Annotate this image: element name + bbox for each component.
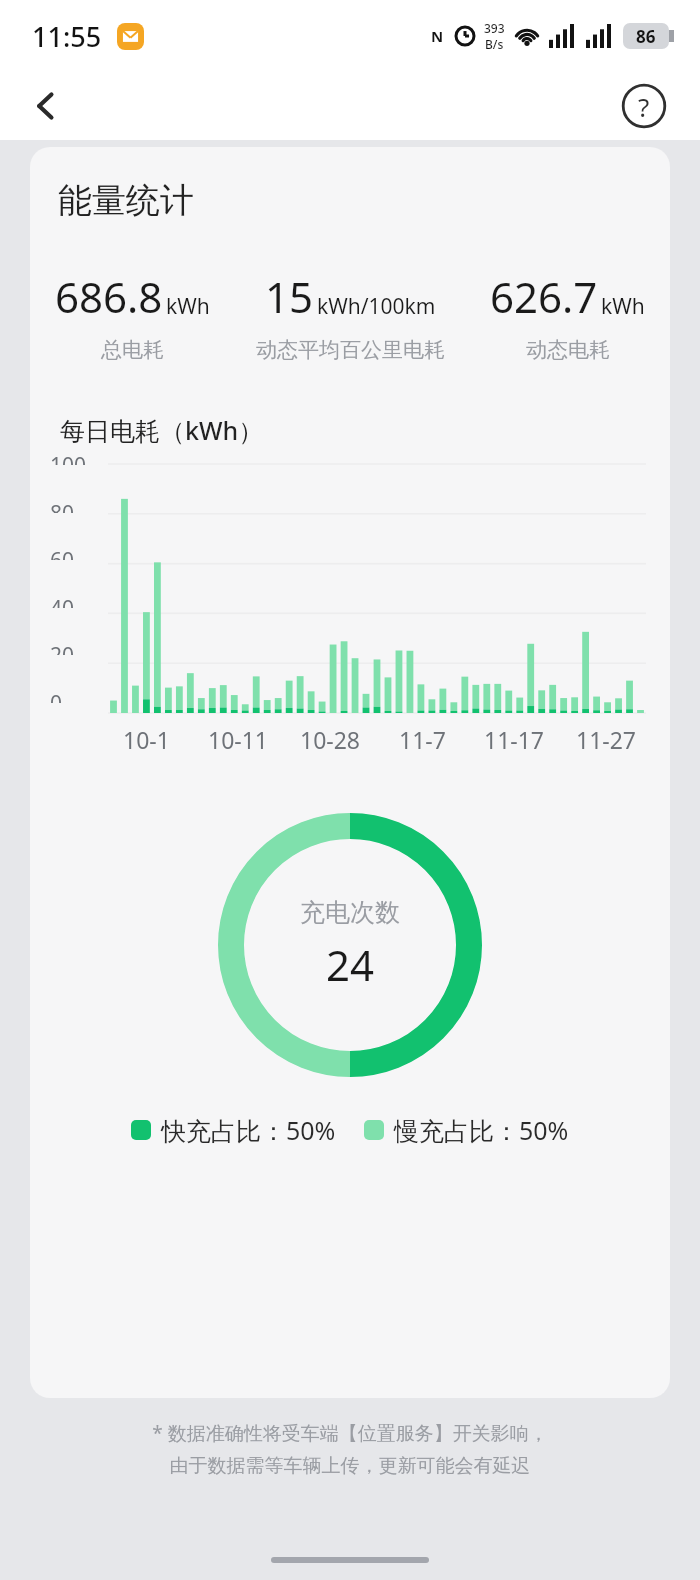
staticText: 626.7	[490, 268, 598, 325]
staticText: 慢充占比：50%	[394, 1113, 569, 1147]
staticText: 40	[50, 594, 100, 608]
button[interactable]: Help	[616, 78, 672, 134]
staticText: ?	[638, 89, 650, 124]
staticText: 快充占比：50%	[161, 1113, 336, 1147]
staticText: 10-1	[123, 724, 170, 755]
staticText: 686.8	[55, 268, 163, 325]
staticText: 每日电耗（kWh）	[60, 413, 264, 447]
staticText: kWh	[166, 292, 210, 321]
button[interactable]: 快充占比：50%	[131, 1113, 336, 1147]
staticText: 11-7	[399, 724, 446, 755]
staticText: 11:55	[32, 18, 102, 55]
staticText: * 数据准确性将受车端【位置服务】开关影响，	[0, 1420, 700, 1446]
staticText: 10-28	[300, 724, 361, 755]
staticText: 总电耗	[101, 337, 164, 363]
staticText: 能量统计	[58, 179, 194, 222]
button[interactable]: 慢充占比：50%	[364, 1113, 569, 1147]
staticText: kWh	[601, 292, 645, 321]
staticText: 动态平均百公里电耗	[256, 337, 445, 363]
staticText: N	[431, 26, 444, 46]
staticText: 10-11	[208, 724, 269, 755]
staticText: 由于数据需等车辆上传，更新可能会有延迟	[0, 1454, 700, 1478]
staticText: 393	[484, 20, 505, 36]
staticText: 100	[50, 451, 100, 465]
staticText: 15	[265, 268, 314, 325]
staticText: 11-27	[576, 724, 637, 755]
staticText: 86	[636, 25, 656, 48]
staticText: B/s	[485, 36, 504, 52]
staticText: 24	[326, 936, 375, 993]
staticText: 20	[50, 641, 100, 655]
staticText: 80	[50, 499, 100, 513]
staticText: 0	[50, 689, 100, 703]
button[interactable]: Back	[14, 74, 78, 138]
staticText: 11-17	[484, 724, 545, 755]
staticText: 60	[50, 546, 100, 560]
staticText: 充电次数	[300, 897, 400, 928]
staticText: 动态电耗	[526, 337, 610, 363]
staticText: kWh/100km	[317, 292, 436, 321]
